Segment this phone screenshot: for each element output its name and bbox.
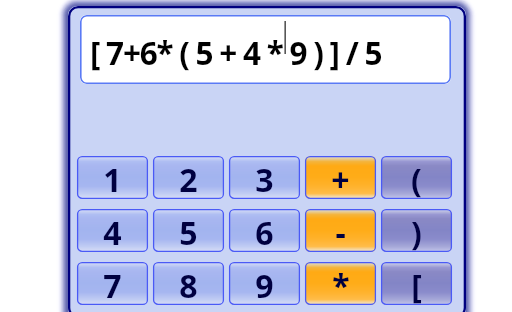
staticText: [ — [411, 264, 422, 307]
button[interactable]: 1 — [77, 156, 148, 199]
button[interactable]: 9 — [229, 262, 300, 305]
button[interactable]: [ — [381, 262, 452, 305]
staticText: 6 — [255, 211, 274, 254]
staticText: 3 — [255, 158, 274, 201]
button[interactable]: 2 — [153, 156, 224, 199]
staticText: 1 — [103, 158, 122, 201]
button[interactable]: - — [305, 209, 376, 252]
staticText: 8 — [179, 264, 198, 307]
staticText: ( — [411, 158, 422, 201]
button[interactable]: + — [305, 156, 376, 199]
button[interactable]: ( — [381, 156, 452, 199]
button[interactable]: 3 — [229, 156, 300, 199]
button[interactable]: * — [305, 262, 376, 305]
staticText: ) — [411, 211, 422, 254]
button[interactable]: 6 — [229, 209, 300, 252]
button[interactable]: 8 — [153, 262, 224, 305]
button[interactable]: 4 — [77, 209, 148, 252]
button[interactable]: [ 7+6* ( 5 + 4 * 9 ) ] / 5 — [80, 15, 451, 84]
staticText: 5 — [179, 211, 198, 254]
staticText: + — [331, 158, 350, 201]
staticText: 9 — [255, 264, 274, 307]
staticText: 4 — [103, 211, 122, 254]
staticText: - — [335, 211, 346, 254]
button[interactable]: 7 — [77, 262, 148, 305]
staticText: [ 7+6* ( 5 + 4 * 9 ) ] / 5 — [90, 31, 382, 74]
staticText: 7 — [103, 264, 122, 307]
button[interactable]: 5 — [153, 209, 224, 252]
staticText: 2 — [179, 158, 198, 201]
button[interactable]: ) — [381, 209, 452, 252]
staticText: * — [332, 264, 350, 307]
